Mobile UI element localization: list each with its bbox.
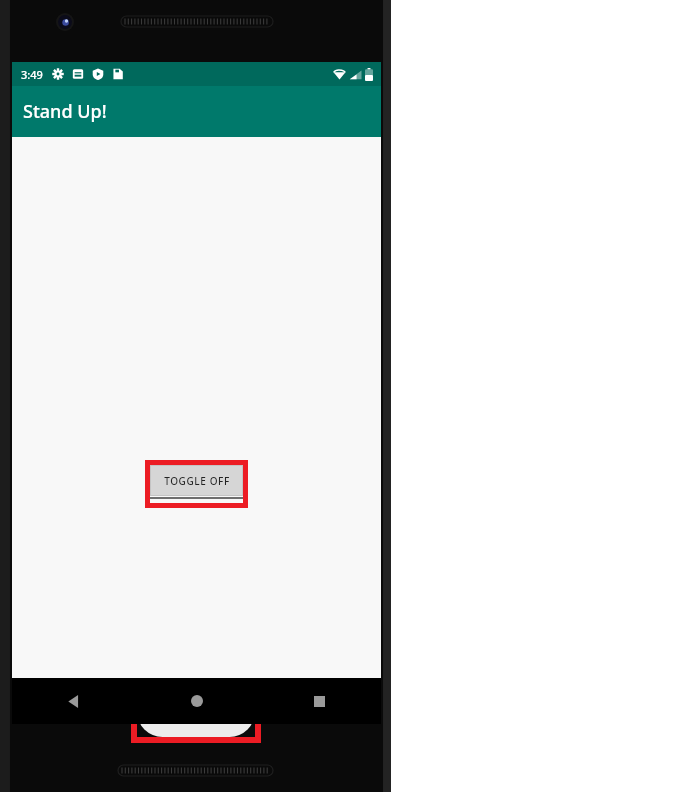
button[interactable]: Back [12, 678, 135, 724]
staticText: Toggel Off! [168, 704, 225, 719]
button[interactable]: Toggel Off! [137, 686, 255, 737]
button[interactable]: TOGGLE OFF [150, 465, 243, 503]
staticText: 3:49 [21, 67, 43, 82]
staticText: Stand Up! [23, 99, 107, 124]
staticText: TOGGLE OFF [164, 474, 230, 488]
button[interactable]: Recent apps [258, 678, 381, 724]
button[interactable]: Home [135, 678, 258, 724]
